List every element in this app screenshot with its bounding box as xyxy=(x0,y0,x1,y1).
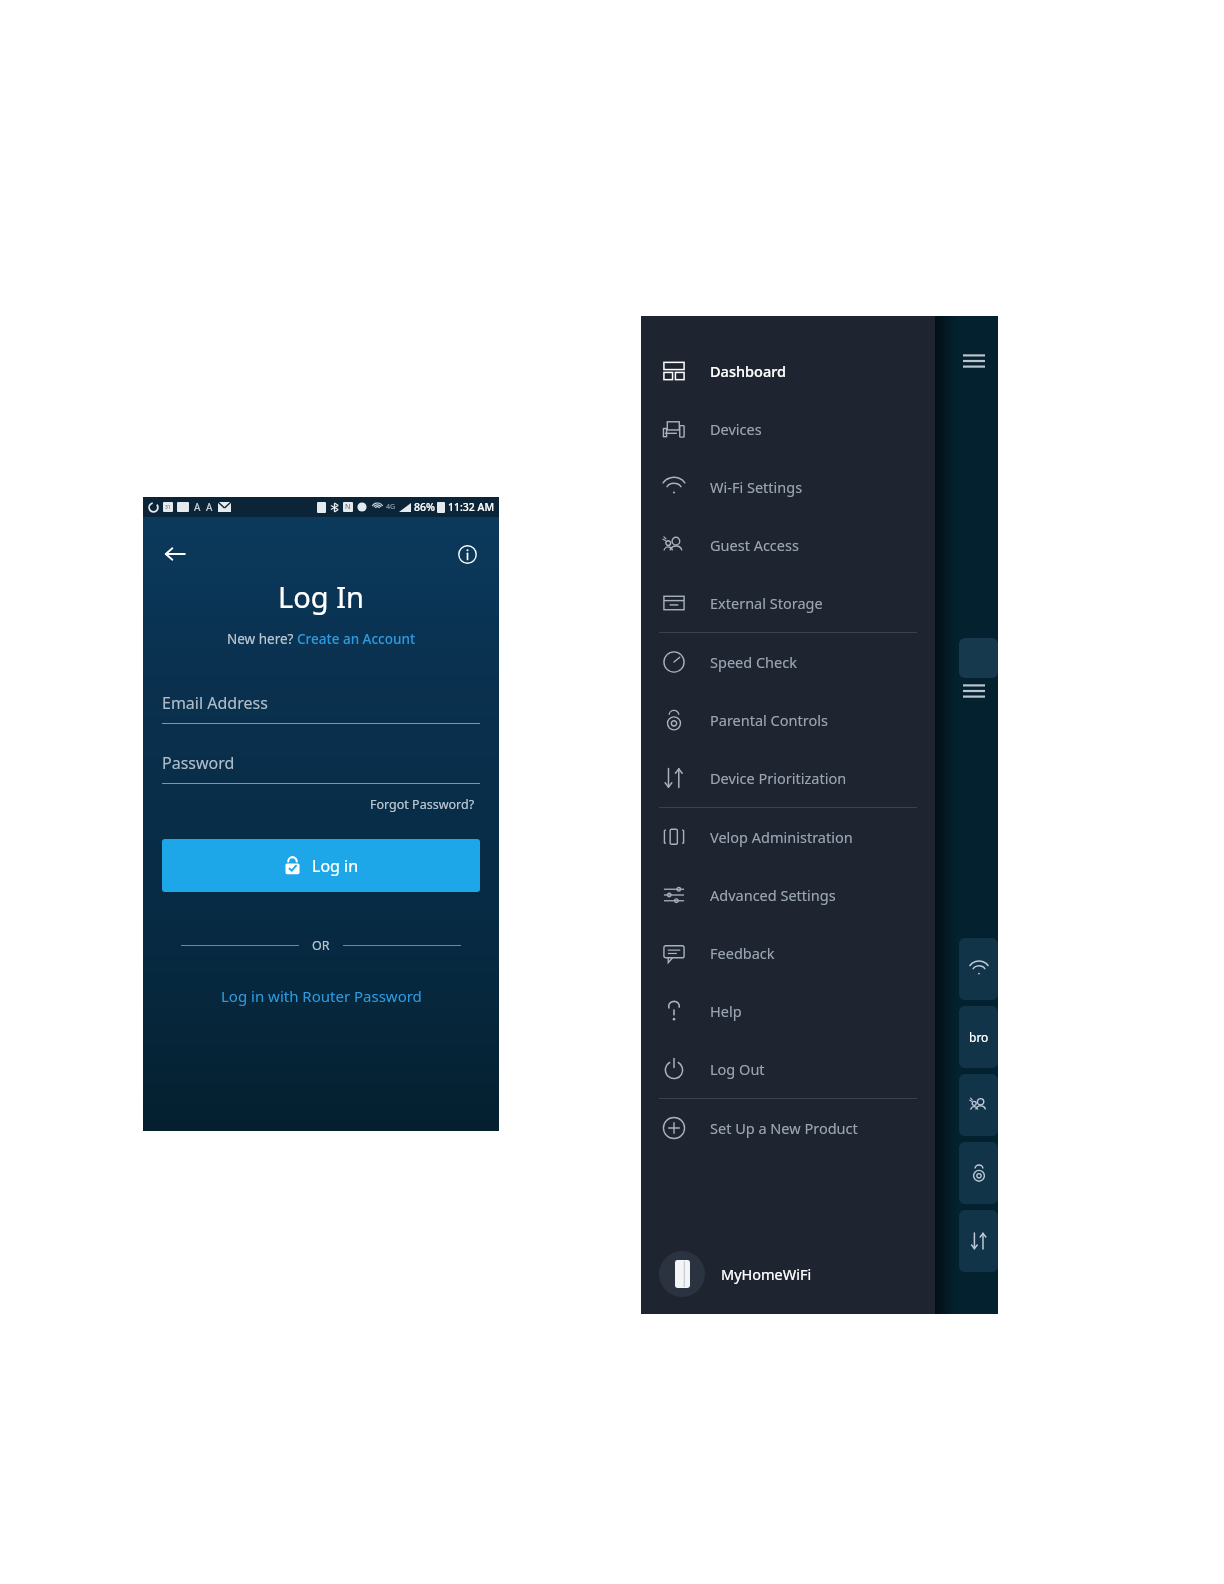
staticText: bro xyxy=(969,1029,989,1045)
staticText: Forgot Password? xyxy=(370,796,475,813)
staticText: Parental Controls xyxy=(710,710,828,730)
button[interactable]: Devices xyxy=(641,400,935,458)
button[interactable]: Dashboard xyxy=(641,342,935,400)
button[interactable]: Back xyxy=(153,532,197,576)
staticText: Log in xyxy=(312,855,359,877)
staticText: N xyxy=(345,502,351,512)
button[interactable]: Log in xyxy=(162,839,480,892)
staticText: Advanced Settings xyxy=(710,885,836,905)
staticText: Log in with Router Password xyxy=(221,986,422,1006)
staticText: MyHomeWiFi xyxy=(721,1264,812,1284)
staticText: 86% xyxy=(414,500,435,514)
staticText: Log Out xyxy=(710,1059,765,1079)
staticText: Log In xyxy=(143,577,499,616)
staticText: Speed Check xyxy=(710,652,797,672)
staticText: External Storage xyxy=(710,593,823,613)
staticText: Devices xyxy=(710,419,762,439)
button[interactable]: Velop Administration xyxy=(641,808,935,866)
button[interactable]: MyHomeWiFi xyxy=(641,1238,935,1310)
staticText: Velop Administration xyxy=(710,827,853,847)
button[interactable]: Email Address xyxy=(162,692,480,724)
staticText: Device Prioritization xyxy=(710,768,847,788)
staticText: Dashboard xyxy=(710,361,787,381)
staticText: 31 xyxy=(165,504,171,511)
staticText: 11:32 AM xyxy=(448,500,495,514)
staticText: Feedback xyxy=(710,943,775,963)
button[interactable]: Help xyxy=(641,982,935,1040)
button[interactable]: Set Up a New Product xyxy=(641,1099,935,1157)
button[interactable]: Parental Controls xyxy=(641,691,935,749)
button[interactable]: Password xyxy=(162,752,480,784)
staticText: A xyxy=(194,500,201,514)
staticText: Guest Access xyxy=(710,535,799,555)
button[interactable]: Advanced Settings xyxy=(641,866,935,924)
staticText: Password xyxy=(162,752,235,774)
button[interactable]: Speed Check xyxy=(641,633,935,691)
button[interactable]: Create an Account xyxy=(297,630,416,648)
button[interactable]: Log in with Router Password xyxy=(215,980,428,1012)
button[interactable]: Feedback xyxy=(641,924,935,982)
button[interactable]: External Storage xyxy=(641,574,935,632)
button[interactable]: Log Out xyxy=(641,1040,935,1098)
button[interactable]: Guest Access xyxy=(641,516,935,574)
staticText: Set Up a New Product xyxy=(710,1118,858,1138)
button[interactable]: Wi-Fi Settings xyxy=(641,458,935,516)
button[interactable]: Device Prioritization xyxy=(641,749,935,807)
staticText: Email Address xyxy=(162,692,268,714)
button[interactable]: Forgot Password? xyxy=(366,792,479,817)
staticText: Help xyxy=(710,1001,742,1021)
staticText: 4G xyxy=(386,502,396,512)
staticText: Create an Account xyxy=(297,630,416,648)
staticText: New here? xyxy=(227,630,297,648)
staticText: OR xyxy=(312,937,330,954)
staticText: Wi-Fi Settings xyxy=(710,477,803,497)
staticText: A xyxy=(206,500,213,514)
button[interactable]: Info xyxy=(447,534,487,574)
